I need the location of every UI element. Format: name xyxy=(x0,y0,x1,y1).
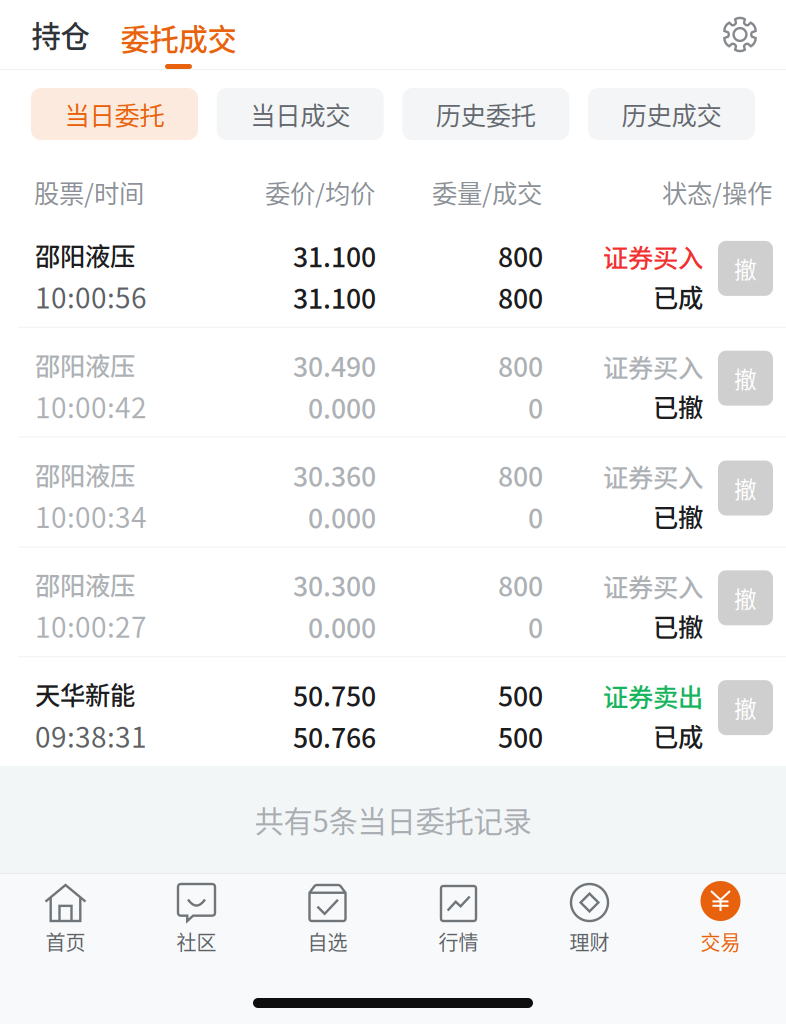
staticText: 31.100 xyxy=(293,278,376,316)
staticText: 证券卖出 xyxy=(603,677,703,714)
button[interactable]: 行情 xyxy=(393,874,524,959)
staticText: 社区 xyxy=(176,927,216,956)
staticText: 股票/时间 xyxy=(34,174,144,210)
staticText: 证券买入 xyxy=(603,458,703,494)
button[interactable]: 设置 xyxy=(712,6,768,62)
staticText: 800 xyxy=(498,566,543,604)
staticText: 30.360 xyxy=(293,456,376,494)
staticText: 证券买入 xyxy=(603,238,703,275)
button[interactable]: 自选 xyxy=(262,874,393,959)
staticText: 800 xyxy=(498,346,543,385)
staticText: 30.490 xyxy=(293,346,376,385)
staticText: 已成 xyxy=(653,278,703,315)
staticText: 800 xyxy=(498,278,543,316)
staticText: 0.000 xyxy=(308,607,376,646)
staticText: 自选 xyxy=(307,927,347,956)
staticText: 已撤 xyxy=(653,388,703,424)
button[interactable]: 委托成交 xyxy=(99,0,258,69)
button[interactable]: 历史委托 xyxy=(402,88,569,140)
staticText: 证券买入 xyxy=(603,568,703,604)
staticText: 理财 xyxy=(569,927,609,956)
staticText: 已撤 xyxy=(653,607,703,644)
staticText: 撤 xyxy=(734,472,757,504)
staticText: 31.100 xyxy=(293,236,376,275)
staticText: 0 xyxy=(528,497,543,536)
staticText: 10:00:56 xyxy=(35,276,147,316)
button[interactable]: 当日委托 xyxy=(31,88,198,140)
staticText: 0.000 xyxy=(308,388,376,426)
staticText: 撤 xyxy=(734,362,757,395)
staticText: 0 xyxy=(528,388,543,426)
button[interactable]: 首页 xyxy=(0,874,131,959)
staticText: 已撤 xyxy=(653,497,703,534)
staticText: 30.300 xyxy=(293,566,376,604)
staticText: 800 xyxy=(498,456,543,494)
staticText: 当日成交 xyxy=(250,96,350,132)
staticText: 邵阳液压 xyxy=(35,566,135,602)
staticText: 50.750 xyxy=(293,675,376,714)
staticText: 已成 xyxy=(653,717,703,754)
staticText: 委价/均价 xyxy=(265,174,375,210)
staticText: 10:00:27 xyxy=(35,605,147,646)
button[interactable]: 撤 xyxy=(718,351,773,406)
staticText: 800 xyxy=(498,236,543,275)
staticText: 邵阳液压 xyxy=(35,456,135,493)
staticText: 撤 xyxy=(734,252,757,285)
button[interactable]: 撤 xyxy=(718,570,773,625)
button[interactable]: 历史成交 xyxy=(588,88,755,140)
staticText: 历史成交 xyxy=(621,96,721,132)
staticText: 邵阳液压 xyxy=(35,346,135,383)
staticText: 500 xyxy=(498,717,543,756)
staticText: 当日委托 xyxy=(64,96,164,132)
staticText: 历史委托 xyxy=(436,96,536,132)
button[interactable]: 持仓 xyxy=(22,0,99,69)
staticText: 邵阳液压 xyxy=(35,236,135,273)
staticText: 50.766 xyxy=(293,717,376,756)
staticText: 状态/操作 xyxy=(662,174,772,210)
staticText: 10:00:42 xyxy=(35,386,147,426)
button[interactable]: 撤 xyxy=(718,241,773,296)
staticText: 09:38:31 xyxy=(35,715,147,756)
staticText: 共有5条当日委托记录 xyxy=(254,798,531,841)
button[interactable]: 撤 xyxy=(718,680,773,735)
staticText: 0.000 xyxy=(308,497,376,536)
button[interactable]: 社区 xyxy=(131,874,262,959)
staticText: 行情 xyxy=(438,927,478,956)
staticText: 持仓 xyxy=(31,13,89,56)
staticText: 天华新能 xyxy=(35,675,135,712)
staticText: 委托成交 xyxy=(120,16,236,59)
staticText: 委量/成交 xyxy=(432,174,542,210)
staticText: 撤 xyxy=(734,691,757,724)
staticText: 撤 xyxy=(734,581,757,614)
staticText: 首页 xyxy=(45,927,85,956)
staticText: 500 xyxy=(498,675,543,714)
staticText: 交易 xyxy=(700,927,740,956)
staticText: 10:00:34 xyxy=(35,496,147,536)
staticText: 证券买入 xyxy=(603,348,703,385)
button[interactable]: 当日成交 xyxy=(217,88,384,140)
button[interactable]: 撤 xyxy=(718,460,773,515)
button[interactable]: 理财 xyxy=(524,874,655,959)
staticText: 0 xyxy=(528,607,543,646)
button[interactable]: 交易 xyxy=(655,874,786,959)
